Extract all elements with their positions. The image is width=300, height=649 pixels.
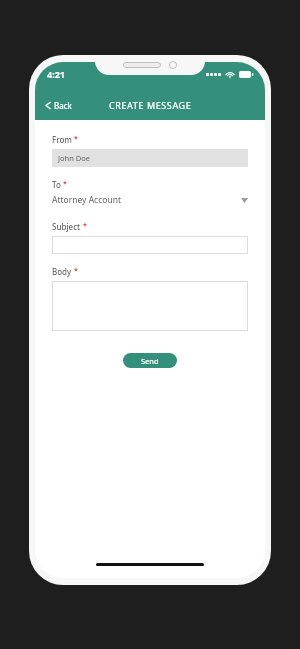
button[interactable]: Send (123, 353, 177, 368)
staticText: * (83, 221, 87, 231)
button[interactable]: Back (41, 96, 76, 115)
staticText: * (63, 179, 67, 189)
button[interactable] (52, 281, 248, 331)
staticText: From (52, 134, 72, 145)
staticText: Body (52, 266, 72, 277)
staticText: * (74, 134, 78, 144)
staticText: Send (141, 356, 159, 366)
staticText: To (52, 179, 61, 190)
staticText: 4:21 (47, 68, 65, 80)
button[interactable]: John Doe (52, 149, 248, 167)
staticText: Back (54, 100, 72, 111)
staticText: John Doe (58, 153, 91, 163)
staticText: Subject (52, 221, 81, 232)
button[interactable] (52, 236, 248, 254)
staticText: * (74, 266, 78, 276)
staticText: CREATE MESSAGE (109, 99, 192, 111)
button[interactable]: Attorney Account (52, 192, 248, 208)
staticText: Attorney Account (52, 194, 121, 206)
